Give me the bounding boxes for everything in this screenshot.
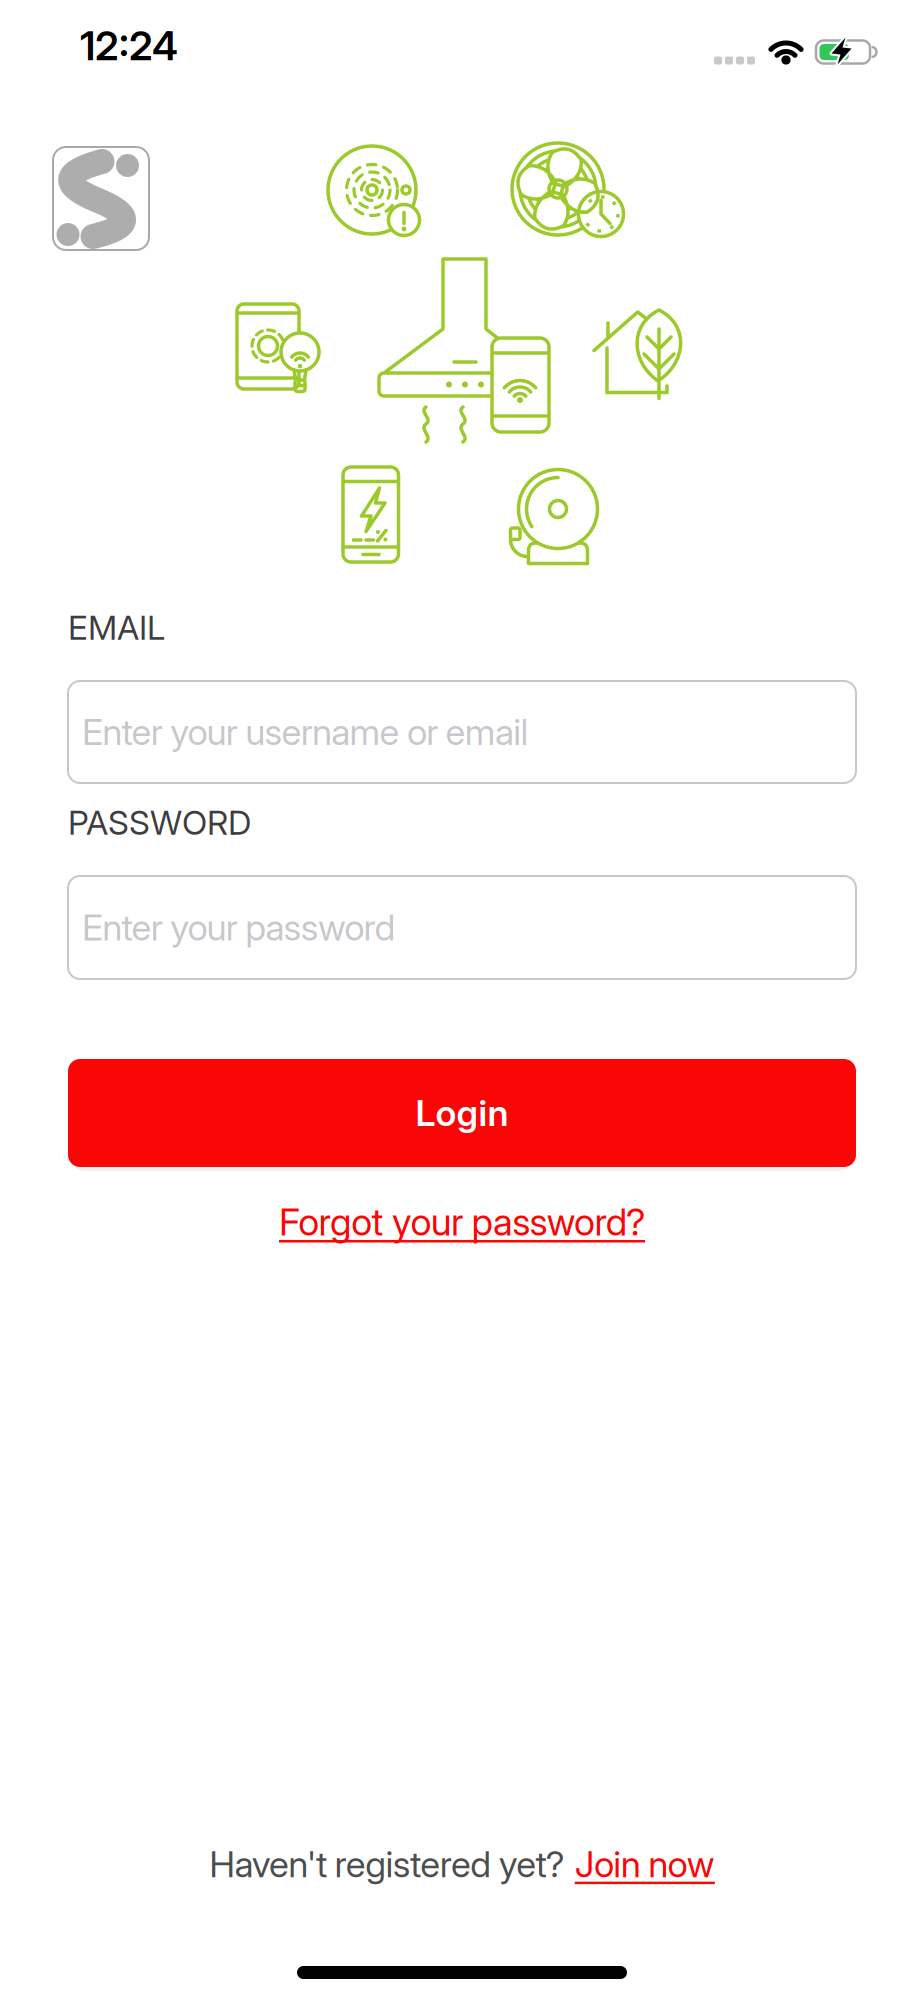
staticText: Forgot your password? — [279, 1200, 645, 1244]
button[interactable]: Enter your password — [68, 876, 856, 979]
staticText: EMAIL — [68, 608, 165, 647]
staticText: Haven't registered yet? — [209, 1843, 565, 1885]
button[interactable]: Login — [68, 1059, 856, 1167]
staticText: Join now — [575, 1843, 715, 1885]
button[interactable]: Join now — [575, 1843, 715, 1885]
staticText: Login — [415, 1092, 508, 1134]
staticText: Enter your username or email — [82, 711, 528, 753]
button[interactable]: Enter your username or email — [68, 681, 856, 783]
staticText: 12:24 — [80, 22, 178, 69]
button[interactable]: Forgot your password? — [279, 1200, 645, 1244]
staticText: Enter your password — [82, 906, 396, 949]
staticText: PASSWORD — [68, 803, 251, 842]
